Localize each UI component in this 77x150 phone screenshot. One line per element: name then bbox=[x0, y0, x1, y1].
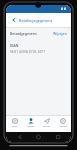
button[interactable]: Betalingsgegevens bbox=[6, 13, 71, 27]
staticText: NL81 ASNB 8724 3871 bbox=[10, 49, 46, 54]
staticText: Saldo bbox=[12, 125, 18, 128]
button[interactable]: Betalen bbox=[39, 116, 55, 132]
staticText: Betaalgegevens bbox=[10, 31, 37, 36]
button[interactable]: Profiel bbox=[23, 116, 39, 132]
button[interactable]: Saldo bbox=[6, 116, 23, 132]
staticText: Service bbox=[60, 125, 67, 128]
staticText: Betalen bbox=[43, 125, 51, 128]
staticText: Betalingsgegevens bbox=[19, 18, 53, 23]
staticText: IBAN bbox=[10, 43, 19, 48]
button[interactable]: Service bbox=[55, 116, 71, 132]
staticText: Profiel bbox=[28, 125, 35, 128]
button[interactable]: Betaalgegevens bbox=[10, 31, 67, 36]
button[interactable]: Wijzigen bbox=[53, 31, 67, 36]
